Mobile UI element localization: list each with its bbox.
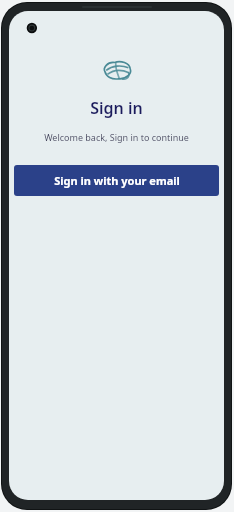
staticText: Welcome back, Sign in to continue	[44, 131, 189, 143]
other: App logo	[102, 59, 132, 81]
staticText: Sign in	[90, 97, 143, 119]
staticText: Sign in with your email	[54, 173, 180, 188]
button[interactable]: Sign in with your email	[14, 165, 219, 196]
